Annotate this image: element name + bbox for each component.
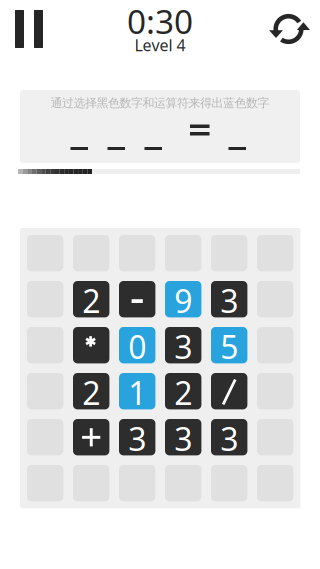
staticText bbox=[41, 417, 49, 460]
staticText bbox=[271, 279, 279, 322]
staticText bbox=[179, 233, 187, 276]
staticText bbox=[271, 417, 279, 460]
staticText: 0:30 bbox=[127, 0, 193, 43]
staticText bbox=[271, 371, 279, 414]
staticText: 2 bbox=[174, 371, 192, 414]
staticText bbox=[271, 325, 279, 368]
staticText: Level 4 bbox=[134, 34, 185, 56]
staticText: 1 bbox=[128, 371, 146, 414]
staticText: 3 bbox=[220, 279, 238, 322]
button[interactable]: Pause bbox=[15, 10, 43, 48]
staticText bbox=[41, 279, 49, 322]
staticText: 3 bbox=[174, 325, 192, 368]
staticText: 通过选择黑色数字和运算符来得出蓝色数字 bbox=[50, 96, 269, 110]
staticText: 0 bbox=[128, 325, 146, 368]
staticText bbox=[133, 463, 141, 506]
staticText bbox=[41, 233, 49, 276]
staticText bbox=[87, 233, 95, 276]
staticText: 2 bbox=[82, 279, 100, 322]
staticText: 3 bbox=[174, 417, 192, 460]
staticText bbox=[41, 463, 49, 506]
staticText bbox=[133, 233, 141, 276]
staticText: 2 bbox=[82, 371, 100, 414]
staticText: 5 bbox=[220, 325, 238, 368]
staticText bbox=[41, 325, 49, 368]
staticText bbox=[225, 463, 233, 506]
staticText bbox=[179, 463, 187, 506]
staticText bbox=[41, 371, 49, 414]
button[interactable]: Restart bbox=[268, 6, 312, 50]
staticText bbox=[225, 233, 233, 276]
staticText bbox=[271, 233, 279, 276]
staticText: 3 bbox=[128, 417, 146, 460]
staticText: 9 bbox=[174, 279, 192, 322]
staticText bbox=[87, 463, 95, 506]
staticText bbox=[271, 463, 279, 506]
staticText: 3 bbox=[220, 417, 238, 460]
